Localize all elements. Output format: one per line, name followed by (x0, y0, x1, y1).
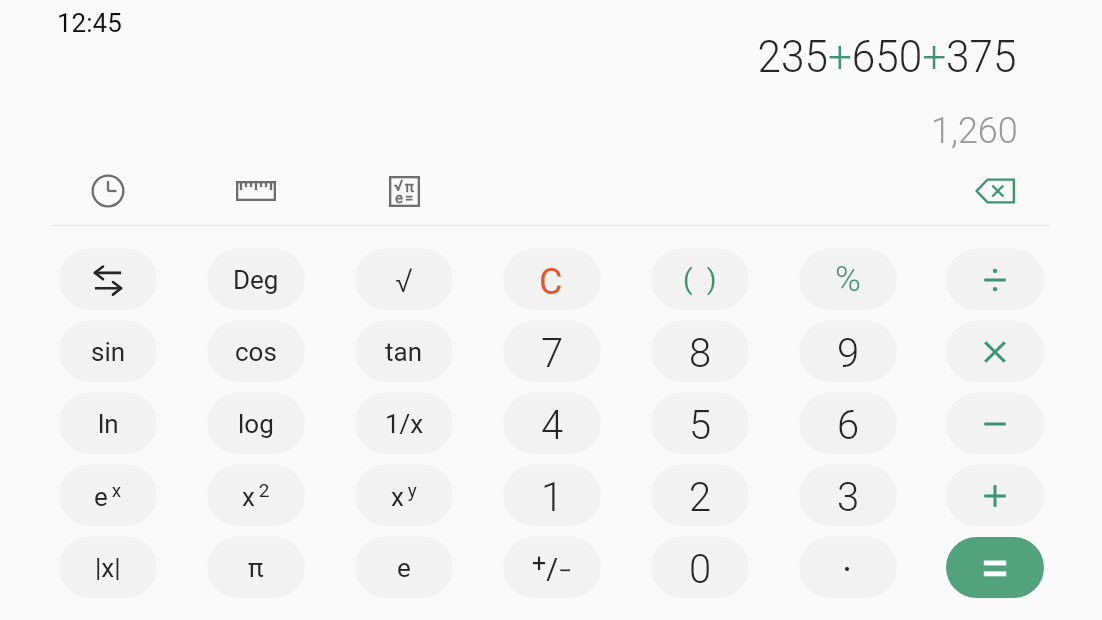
staticText: tan (385, 337, 423, 367)
staticText: π (248, 553, 264, 583)
button[interactable]: Scientific calculator (374, 161, 434, 221)
button[interactable]: Subtract (946, 393, 1044, 454)
button[interactable]: ln (59, 393, 157, 454)
button[interactable]: Deg (207, 249, 305, 310)
staticText: e (395, 189, 403, 207)
button[interactable]: % (799, 249, 897, 310)
button[interactable]: Multiply (946, 321, 1044, 382)
button[interactable]: 7 (503, 321, 601, 382)
button[interactable]: 2 (651, 465, 749, 526)
staticText: % (835, 259, 861, 300)
button[interactable]: 0 (651, 537, 749, 598)
button[interactable]: ( ) (651, 249, 749, 310)
staticText: 4 (541, 402, 564, 449)
button[interactable]: sin (59, 321, 157, 382)
button[interactable]: x y (355, 465, 453, 526)
staticText: 2 (689, 474, 712, 521)
staticText: ( ) (683, 263, 717, 296)
staticText: 3 (837, 474, 860, 521)
staticText: 7 (541, 330, 564, 377)
button[interactable]: 1 (503, 465, 601, 526)
staticText: sin (91, 337, 126, 367)
staticText: Deg (233, 265, 279, 295)
staticText: 1,260 (931, 110, 1018, 152)
button[interactable]: Add (946, 465, 1044, 526)
button[interactable]: Equals (946, 537, 1044, 598)
staticText: 6 (837, 402, 860, 449)
button[interactable]: 4 (503, 393, 601, 454)
staticText: 8 (689, 330, 712, 377)
button[interactable]: 5 (651, 393, 749, 454)
staticText: ln (98, 409, 119, 439)
staticText: √ (394, 177, 403, 195)
staticText: cos (235, 337, 277, 367)
staticText: 0 (689, 546, 712, 593)
staticText: 1 (541, 474, 564, 521)
button[interactable]: x 2 (207, 465, 305, 526)
staticText: log (238, 409, 274, 439)
button[interactable]: cos (207, 321, 305, 382)
button[interactable]: π (207, 537, 305, 598)
staticText: 235+650+375 (758, 30, 1017, 83)
button[interactable]: Decimal point (799, 537, 897, 598)
button[interactable]: tan (355, 321, 453, 382)
button[interactable]: History (78, 161, 138, 221)
button[interactable]: Divide (946, 249, 1044, 310)
button[interactable]: Backspace (965, 161, 1025, 221)
button[interactable]: 1/x (355, 393, 453, 454)
staticText: = (405, 189, 414, 207)
button[interactable]: |x| (59, 537, 157, 598)
button[interactable]: 9 (799, 321, 897, 382)
button[interactable]: C (503, 249, 601, 310)
button[interactable]: e x (59, 465, 157, 526)
button[interactable]: √ (355, 249, 453, 310)
staticText: x y (391, 479, 417, 512)
button[interactable]: 3 (799, 465, 897, 526)
button[interactable]: 8 (651, 321, 749, 382)
staticText: +/− (532, 549, 572, 586)
button[interactable]: 6 (799, 393, 897, 454)
staticText: C (539, 261, 563, 303)
staticText: π (405, 178, 414, 196)
staticText: |x| (95, 553, 121, 583)
staticText: x 2 (242, 479, 270, 512)
staticText: 12:45 (57, 8, 122, 38)
button[interactable]: +/− (503, 537, 601, 598)
staticText: √ (395, 261, 414, 300)
staticText: 9 (837, 330, 860, 377)
staticText: 5 (689, 402, 712, 449)
staticText: e (397, 553, 411, 583)
staticText: e x (94, 479, 122, 512)
button[interactable]: Unit converter (226, 161, 286, 221)
button[interactable]: e (355, 537, 453, 598)
staticText: 1/x (385, 409, 424, 439)
button[interactable]: log (207, 393, 305, 454)
button[interactable]: Switch (59, 249, 157, 310)
